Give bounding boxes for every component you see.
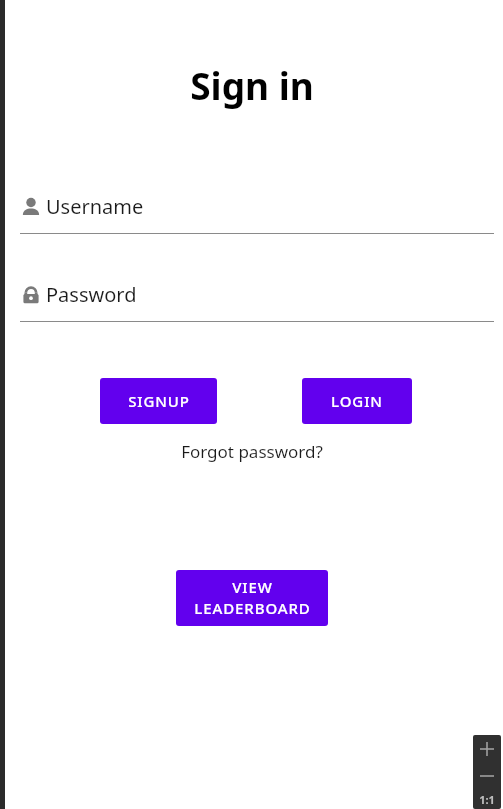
button[interactable]: Zoom in <box>473 735 501 763</box>
button[interactable]: SIGNUP <box>100 378 217 424</box>
staticText: Sign in <box>190 60 314 110</box>
button[interactable]: Zoom out <box>473 763 501 789</box>
staticText: Username <box>46 193 144 220</box>
button[interactable]: Password <box>20 281 494 322</box>
button[interactable]: LOGIN <box>302 378 412 424</box>
staticText: SIGNUP <box>128 391 190 411</box>
button[interactable]: 1:1 <box>473 789 501 809</box>
button[interactable]: Forgot password? <box>181 440 323 463</box>
staticText: Forgot password? <box>181 440 323 463</box>
button[interactable]: VIEW LEADERBOARD <box>176 570 328 626</box>
staticText: VIEW LEADERBOARD <box>194 577 311 619</box>
button[interactable]: Username <box>20 193 494 234</box>
staticText: Password <box>46 281 137 308</box>
staticText: LOGIN <box>331 391 383 411</box>
staticText: 1:1 <box>479 792 495 807</box>
